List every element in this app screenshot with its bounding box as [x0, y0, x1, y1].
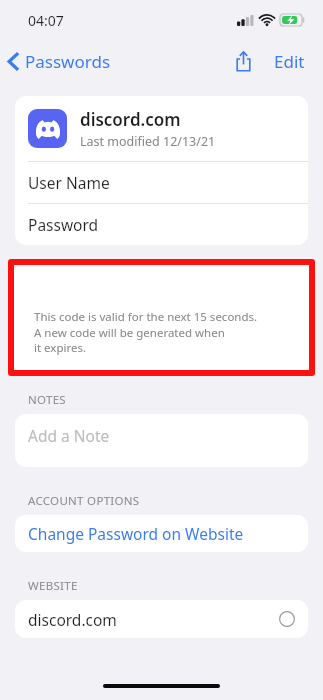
other: Open in Safari [279, 611, 295, 627]
staticText: Last modified 12/13/21 [80, 133, 216, 150]
staticText: NOTES [28, 392, 66, 408]
staticText: Edit [274, 50, 305, 73]
staticText: discord.com [28, 609, 117, 630]
staticText: discord.com [80, 108, 181, 131]
staticText: Change Password on Website [28, 523, 244, 544]
button[interactable]: Edit [270, 46, 309, 77]
button[interactable]: Password [15, 204, 308, 245]
staticText: 04:07 [28, 11, 64, 30]
button[interactable]: discord.com [15, 600, 308, 638]
button[interactable]: Passwords [0, 44, 121, 79]
staticText: WEBSITE [28, 578, 78, 594]
button[interactable]: User Name [15, 162, 308, 203]
staticText: Add a Note [28, 425, 110, 446]
button[interactable]: Add a Note [15, 414, 308, 467]
button[interactable]: This code is valid for the next 15 secon… [14, 265, 309, 370]
staticText: ACCOUNT OPTIONS [28, 493, 140, 509]
staticText: User Name [28, 172, 110, 193]
staticText: This code is valid for the next 15 secon… [34, 309, 258, 355]
staticText: Password [28, 214, 99, 235]
staticText: Passwords [25, 50, 111, 73]
button[interactable]: discord.com [15, 96, 308, 161]
button[interactable]: Change Password on Website [15, 515, 308, 552]
button[interactable]: Share [229, 47, 258, 76]
